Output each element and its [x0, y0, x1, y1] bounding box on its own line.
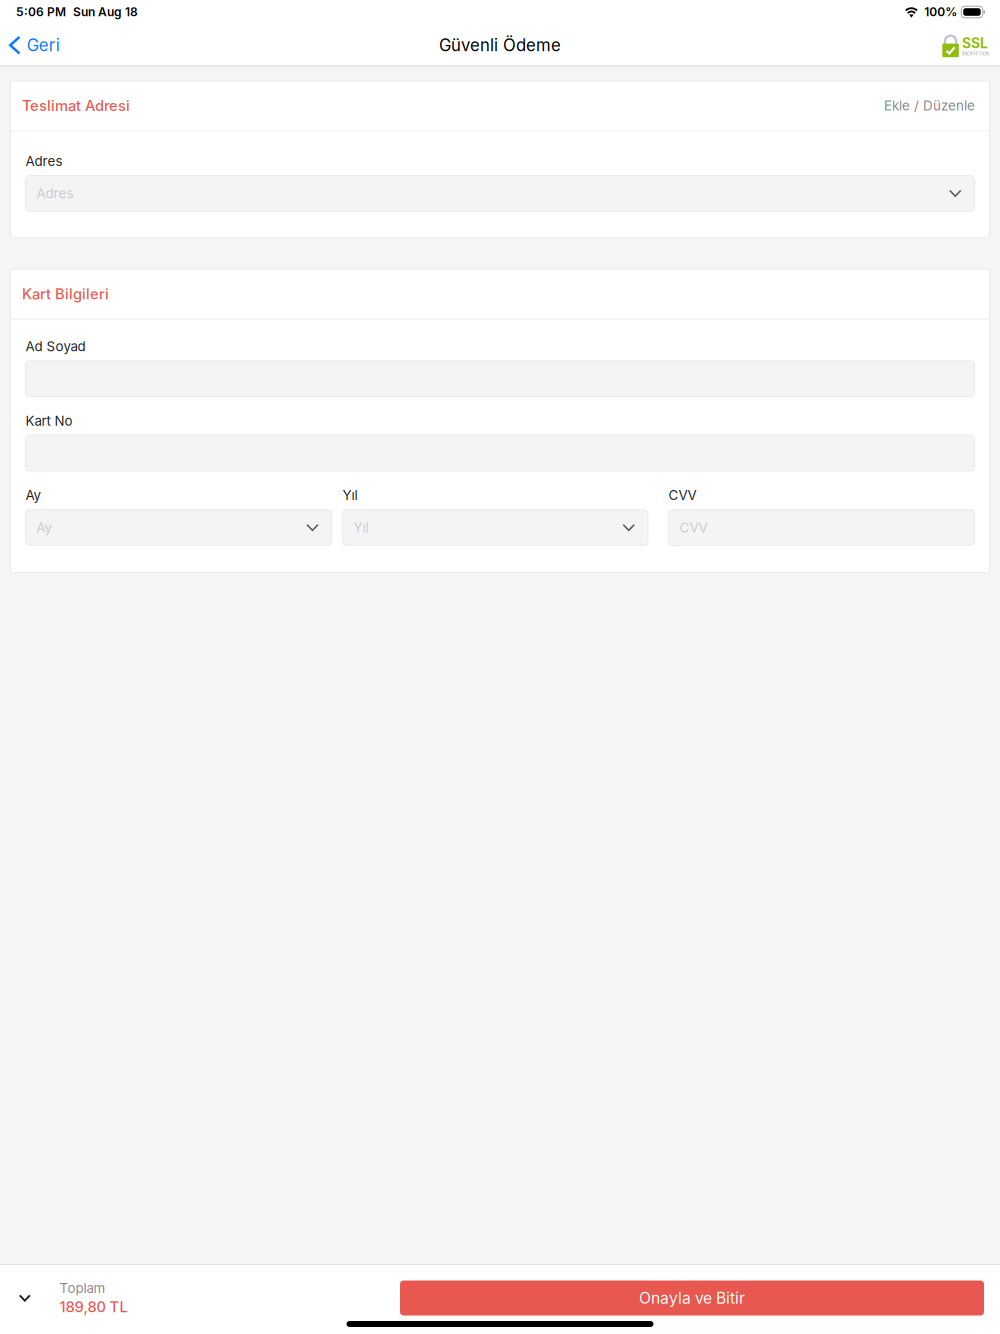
staticText: Ay: [36, 519, 51, 536]
staticText: Ad Soyad: [25, 338, 85, 354]
button[interactable]: SSL Encryption: [942, 31, 1000, 59]
staticText: Sun Aug 18: [73, 5, 138, 19]
staticText: 100%: [924, 5, 957, 19]
staticText: Kart No: [25, 413, 72, 429]
button[interactable]: Ay: [25, 510, 332, 545]
staticText: Ay: [25, 487, 40, 503]
button[interactable]: Geri: [0, 25, 72, 66]
button[interactable]: Yıl: [342, 510, 648, 545]
staticText: ENCRYPTION: [962, 51, 989, 56]
staticText: Kart Bilgileri: [22, 285, 109, 303]
staticText: Ekle / Düzenle: [884, 98, 975, 114]
staticText: Güvenli Ödeme: [439, 35, 561, 55]
staticText: Adres: [36, 185, 73, 201]
staticText: Onayla ve Bitir: [639, 1289, 745, 1307]
button[interactable]: Sipariş özetini göster: [0, 1273, 59, 1323]
staticText: Geri: [27, 35, 60, 55]
staticText: Teslimat Adresi: [22, 97, 130, 115]
button[interactable]: Ekle / Düzenle: [884, 98, 975, 114]
staticText: CVV: [668, 487, 696, 503]
staticText: SSL: [962, 35, 988, 51]
button[interactable]: Adres: [25, 175, 974, 211]
staticText: 5:06 PM: [16, 5, 66, 19]
staticText: Adres: [25, 153, 62, 169]
staticText: 189,80 TL: [59, 1298, 127, 1316]
button[interactable]: Onayla ve Bitir: [400, 1280, 984, 1315]
staticText: Yıl: [342, 487, 357, 503]
staticText: CVV: [679, 519, 707, 536]
staticText: Yıl: [353, 519, 368, 536]
staticText: Toplam: [59, 1280, 105, 1296]
